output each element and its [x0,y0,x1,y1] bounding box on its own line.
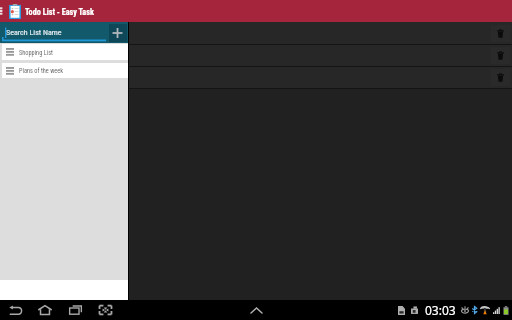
button[interactable]: Home [30,300,60,320]
button[interactable]: Search List Name [0,22,110,43]
button[interactable]: Back [0,300,30,320]
button[interactable]: Plans of the week [2,63,128,78]
staticText: Plans of the week [19,67,64,74]
staticText: Search List Name [6,28,62,37]
button[interactable]: Show status bar [243,300,269,320]
button[interactable]: Delete [491,47,510,64]
staticText: Shopping List [19,49,53,56]
staticText: Todo List - Easy Task [25,7,94,17]
button[interactable]: Recent apps [60,300,90,320]
button[interactable]: Delete [491,25,510,42]
button[interactable]: Full screen [90,300,120,320]
button[interactable]: Navigation menu [0,0,9,22]
button[interactable]: Add list [109,24,127,42]
staticText: 03:03 [425,302,456,318]
button[interactable]: Delete [491,69,510,86]
button[interactable]: Shopping List [2,44,128,60]
